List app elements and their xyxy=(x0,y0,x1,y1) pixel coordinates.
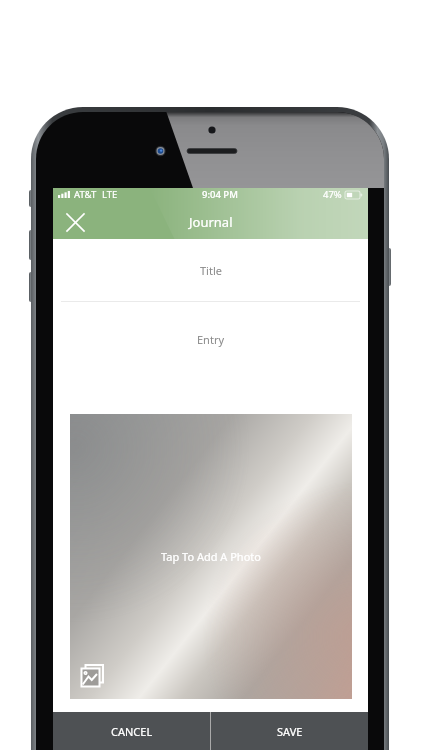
staticText: 9:04 PM xyxy=(202,188,238,201)
staticText: SAVE xyxy=(277,724,303,739)
staticText: Title xyxy=(200,263,222,278)
button[interactable]: Close xyxy=(60,207,90,237)
staticText: AT&T xyxy=(74,188,97,201)
staticText: 47% xyxy=(323,188,342,201)
button[interactable]: SAVE xyxy=(211,712,368,750)
staticText: LTE xyxy=(102,188,118,201)
button[interactable]: Add photo xyxy=(80,663,105,688)
button[interactable]: Tap To Add A Photo xyxy=(70,414,352,699)
staticText: Tap To Add A Photo xyxy=(161,549,261,564)
staticText: Journal xyxy=(189,213,233,231)
staticText: Entry xyxy=(197,332,225,347)
button[interactable]: CANCEL xyxy=(53,712,210,750)
staticText: CANCEL xyxy=(111,724,153,739)
